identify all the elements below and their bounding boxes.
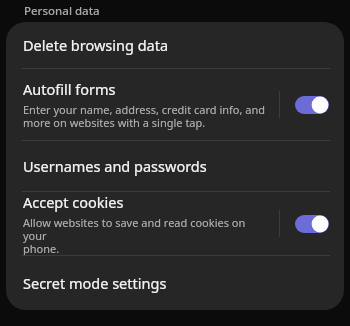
staticText: Usernames and passwords [23, 156, 207, 176]
button[interactable]: Autofill forms [280, 69, 344, 140]
staticText: Enter your name, address, credit card in… [23, 102, 266, 130]
button[interactable]: Delete browsing data [6, 22, 344, 68]
button[interactable]: Usernames and passwords [6, 141, 344, 191]
staticText: Autofill forms [23, 79, 116, 99]
staticText: Personal data [24, 3, 100, 19]
staticText: Secret mode settings [23, 273, 167, 293]
button[interactable]: Autofill forms [6, 69, 344, 140]
staticText: Delete browsing data [23, 35, 169, 55]
button[interactable]: Accept cookies [6, 192, 344, 255]
staticText: Allow websites to save and read cookies … [23, 215, 271, 255]
staticText: Accept cookies [23, 192, 124, 212]
button[interactable]: Secret mode settings [6, 256, 344, 310]
button[interactable]: Accept cookies [280, 192, 344, 255]
